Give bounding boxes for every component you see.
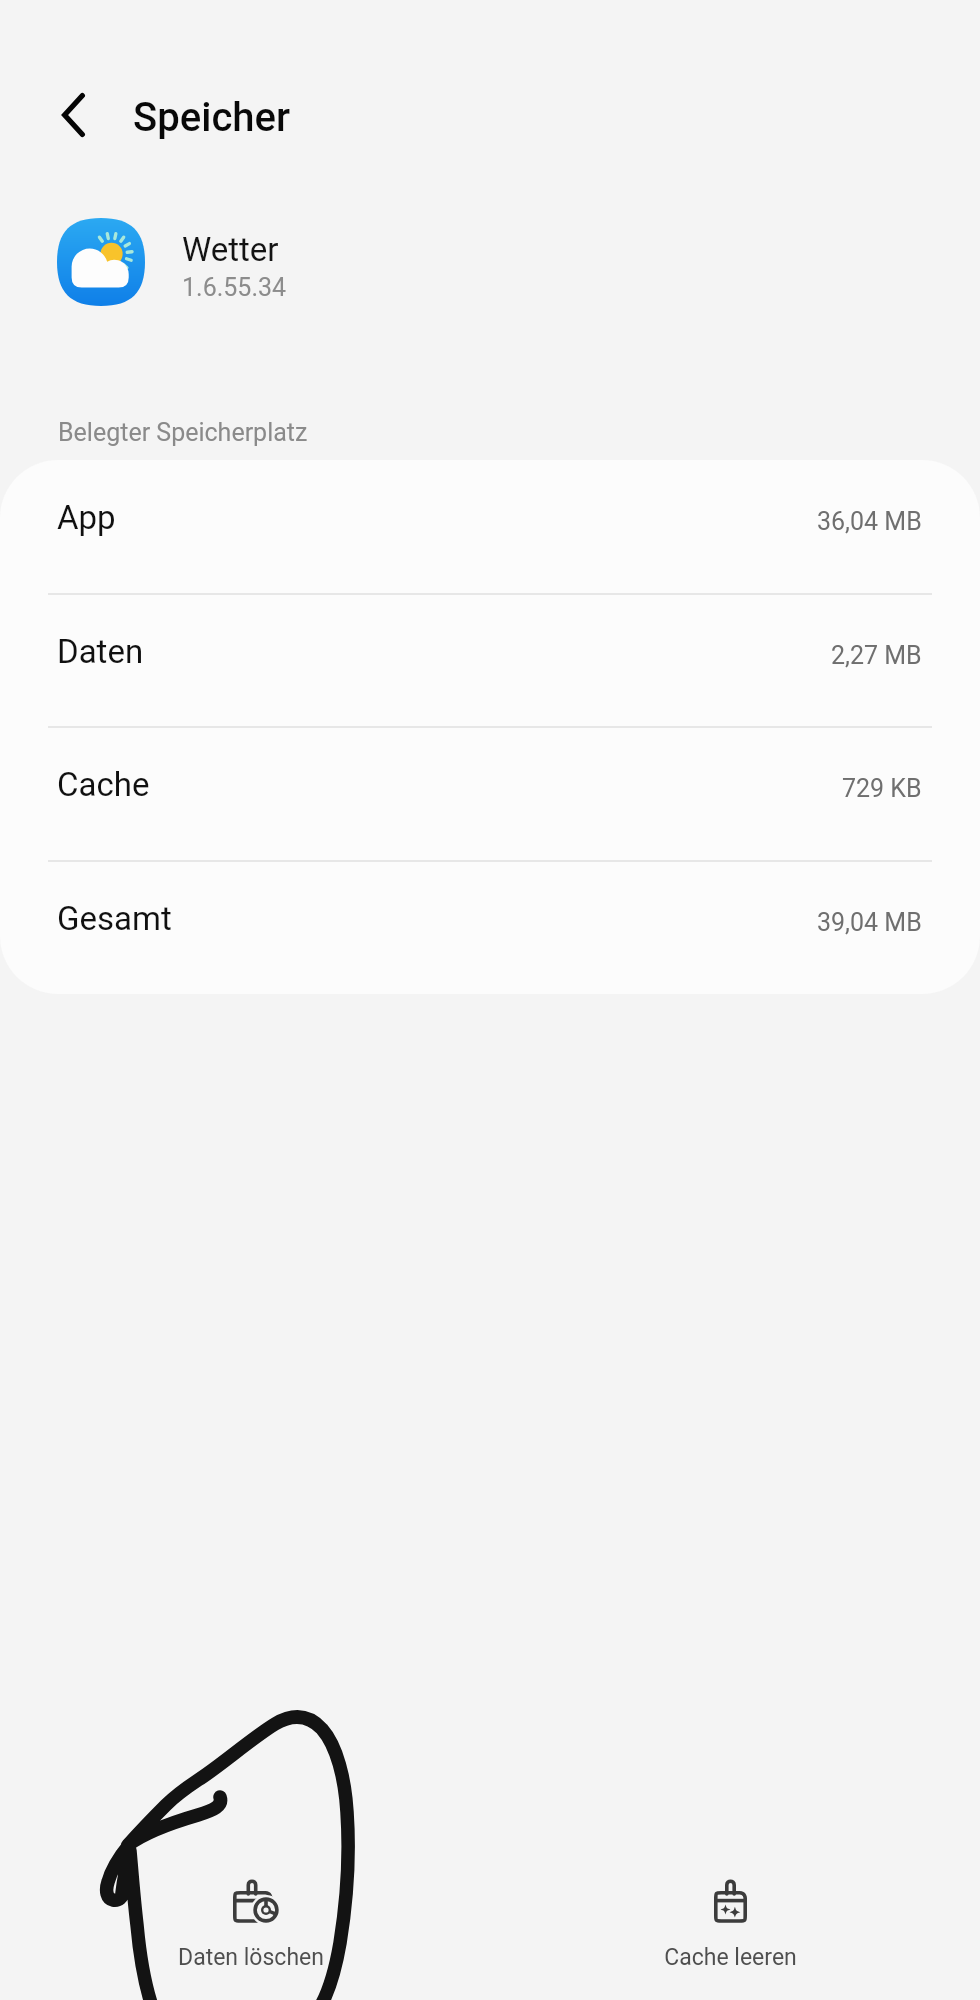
staticText: Cache	[57, 765, 150, 804]
button[interactable]: Cache leeren	[605, 1845, 855, 2000]
staticText: 36,04 MB	[817, 507, 922, 536]
staticText: Belegter Speicherplatz	[58, 418, 308, 447]
staticText: App	[57, 498, 116, 537]
button[interactable]: Daten	[0, 594, 980, 728]
button[interactable]: Back	[37, 79, 109, 151]
staticText: Daten	[57, 632, 144, 671]
button[interactable]: Gesamt	[0, 861, 980, 995]
staticText: Speicher	[133, 94, 291, 141]
staticText: Wetter	[182, 230, 279, 269]
staticText: 39,04 MB	[817, 908, 922, 937]
staticText: 2,27 MB	[831, 641, 922, 670]
button[interactable]: Cache	[0, 727, 980, 861]
staticText: 729 KB	[842, 774, 922, 803]
staticText: 1.6.55.34	[182, 273, 287, 302]
button[interactable]: App	[0, 460, 980, 594]
button[interactable]: Daten löschen	[126, 1845, 376, 2000]
staticText: Cache leeren	[664, 1944, 797, 1971]
staticText: Gesamt	[57, 899, 172, 938]
staticText: Daten löschen	[178, 1944, 324, 1971]
